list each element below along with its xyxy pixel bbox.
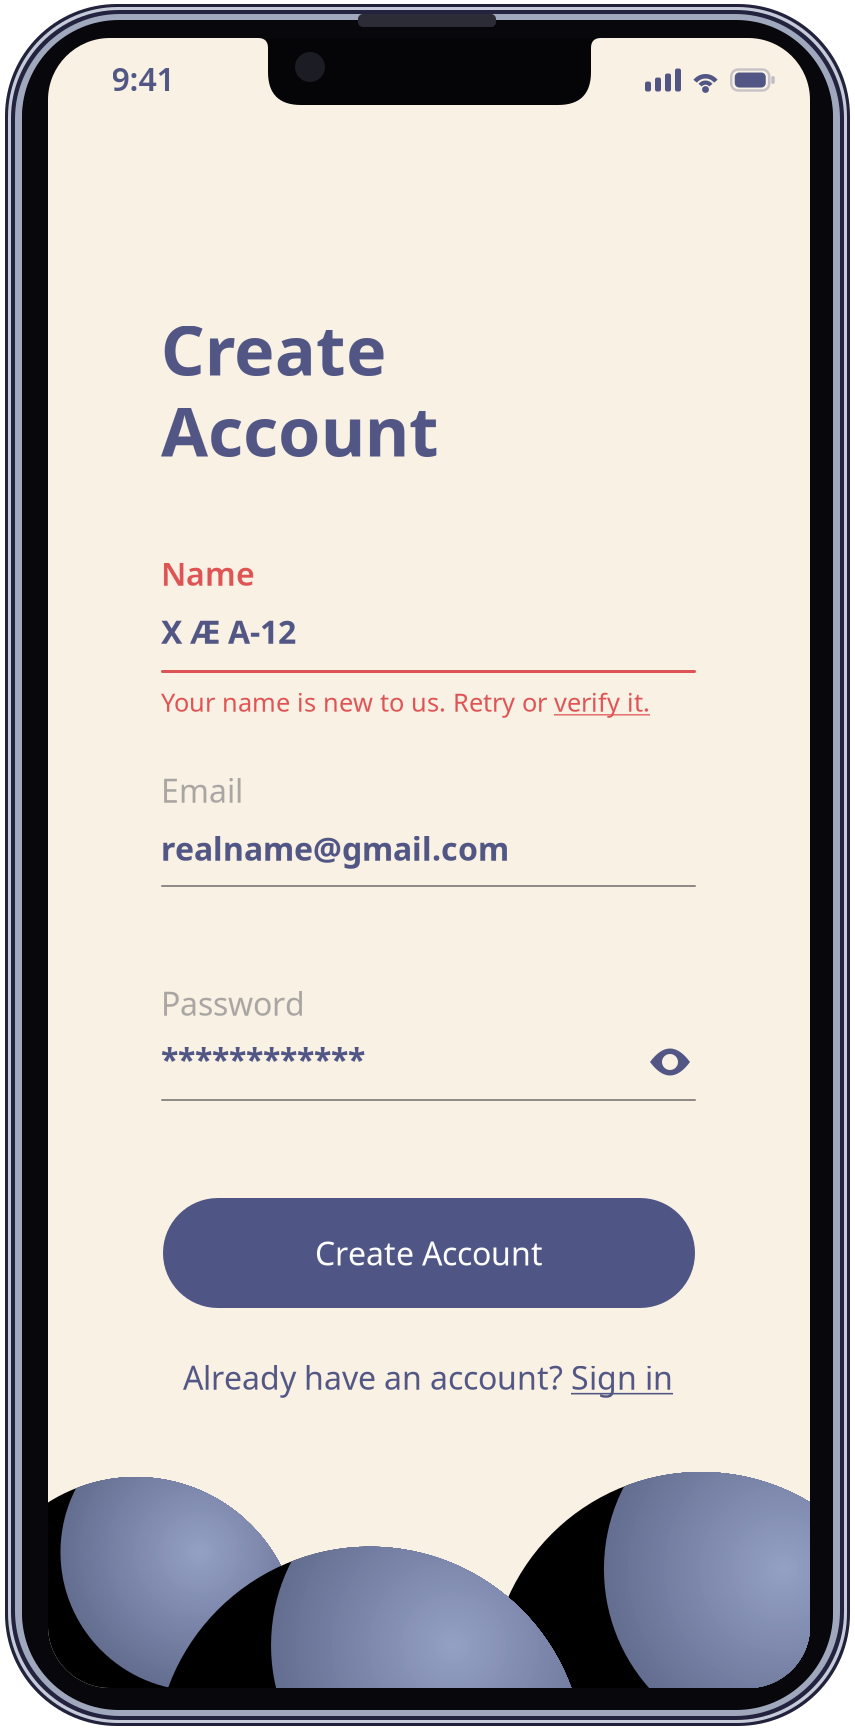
staticText: verify it.	[554, 685, 650, 719]
staticText: Sign in	[571, 1356, 673, 1398]
button[interactable]: Sign in	[571, 1356, 673, 1398]
button[interactable]: verify it.	[554, 685, 650, 719]
staticText: Create	[161, 304, 387, 394]
staticText: Name	[161, 552, 255, 594]
staticText: Email	[161, 769, 243, 811]
staticText: realname@gmail.com	[161, 827, 509, 869]
staticText: Password	[161, 982, 305, 1024]
button[interactable]: Show password	[640, 1034, 700, 1090]
staticText: ************	[161, 1038, 365, 1080]
staticText: Your name is new to us. Retry or	[161, 685, 554, 719]
staticText: Already have an account?	[183, 1356, 571, 1398]
staticText: Account	[161, 385, 439, 475]
staticText: Create Account	[315, 1232, 543, 1274]
button[interactable]: Create Account	[163, 1198, 695, 1308]
staticText: 9:41	[112, 57, 175, 100]
staticText: X Æ A-12	[161, 610, 296, 652]
